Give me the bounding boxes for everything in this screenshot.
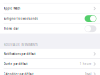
staticText: Thème clair: [4, 27, 19, 30]
button[interactable]: Durée par défaut: [0, 59, 100, 69]
staticText: Surligner les week-ends: [4, 17, 38, 20]
staticText: Notifications par défaut: [4, 52, 36, 56]
staticText: 1 heure: [80, 62, 92, 66]
button[interactable]: Calendrier par défaut: [0, 69, 100, 75]
staticText: Calendrier par défaut: [4, 72, 34, 75]
staticText: Travail: [85, 72, 92, 75]
button[interactable]: Surligner les week-ends: [0, 14, 100, 24]
staticText: Durée par défaut: [4, 62, 28, 66]
button[interactable]: Thème clair: [0, 24, 100, 34]
staticText: NOUVEAUX ÉVÉNEMENTS: [4, 43, 37, 47]
button[interactable]: Apple Watch: [0, 3, 100, 14]
staticText: Apple Watch: [4, 7, 21, 10]
button[interactable]: Notifications par défaut: [0, 49, 100, 59]
